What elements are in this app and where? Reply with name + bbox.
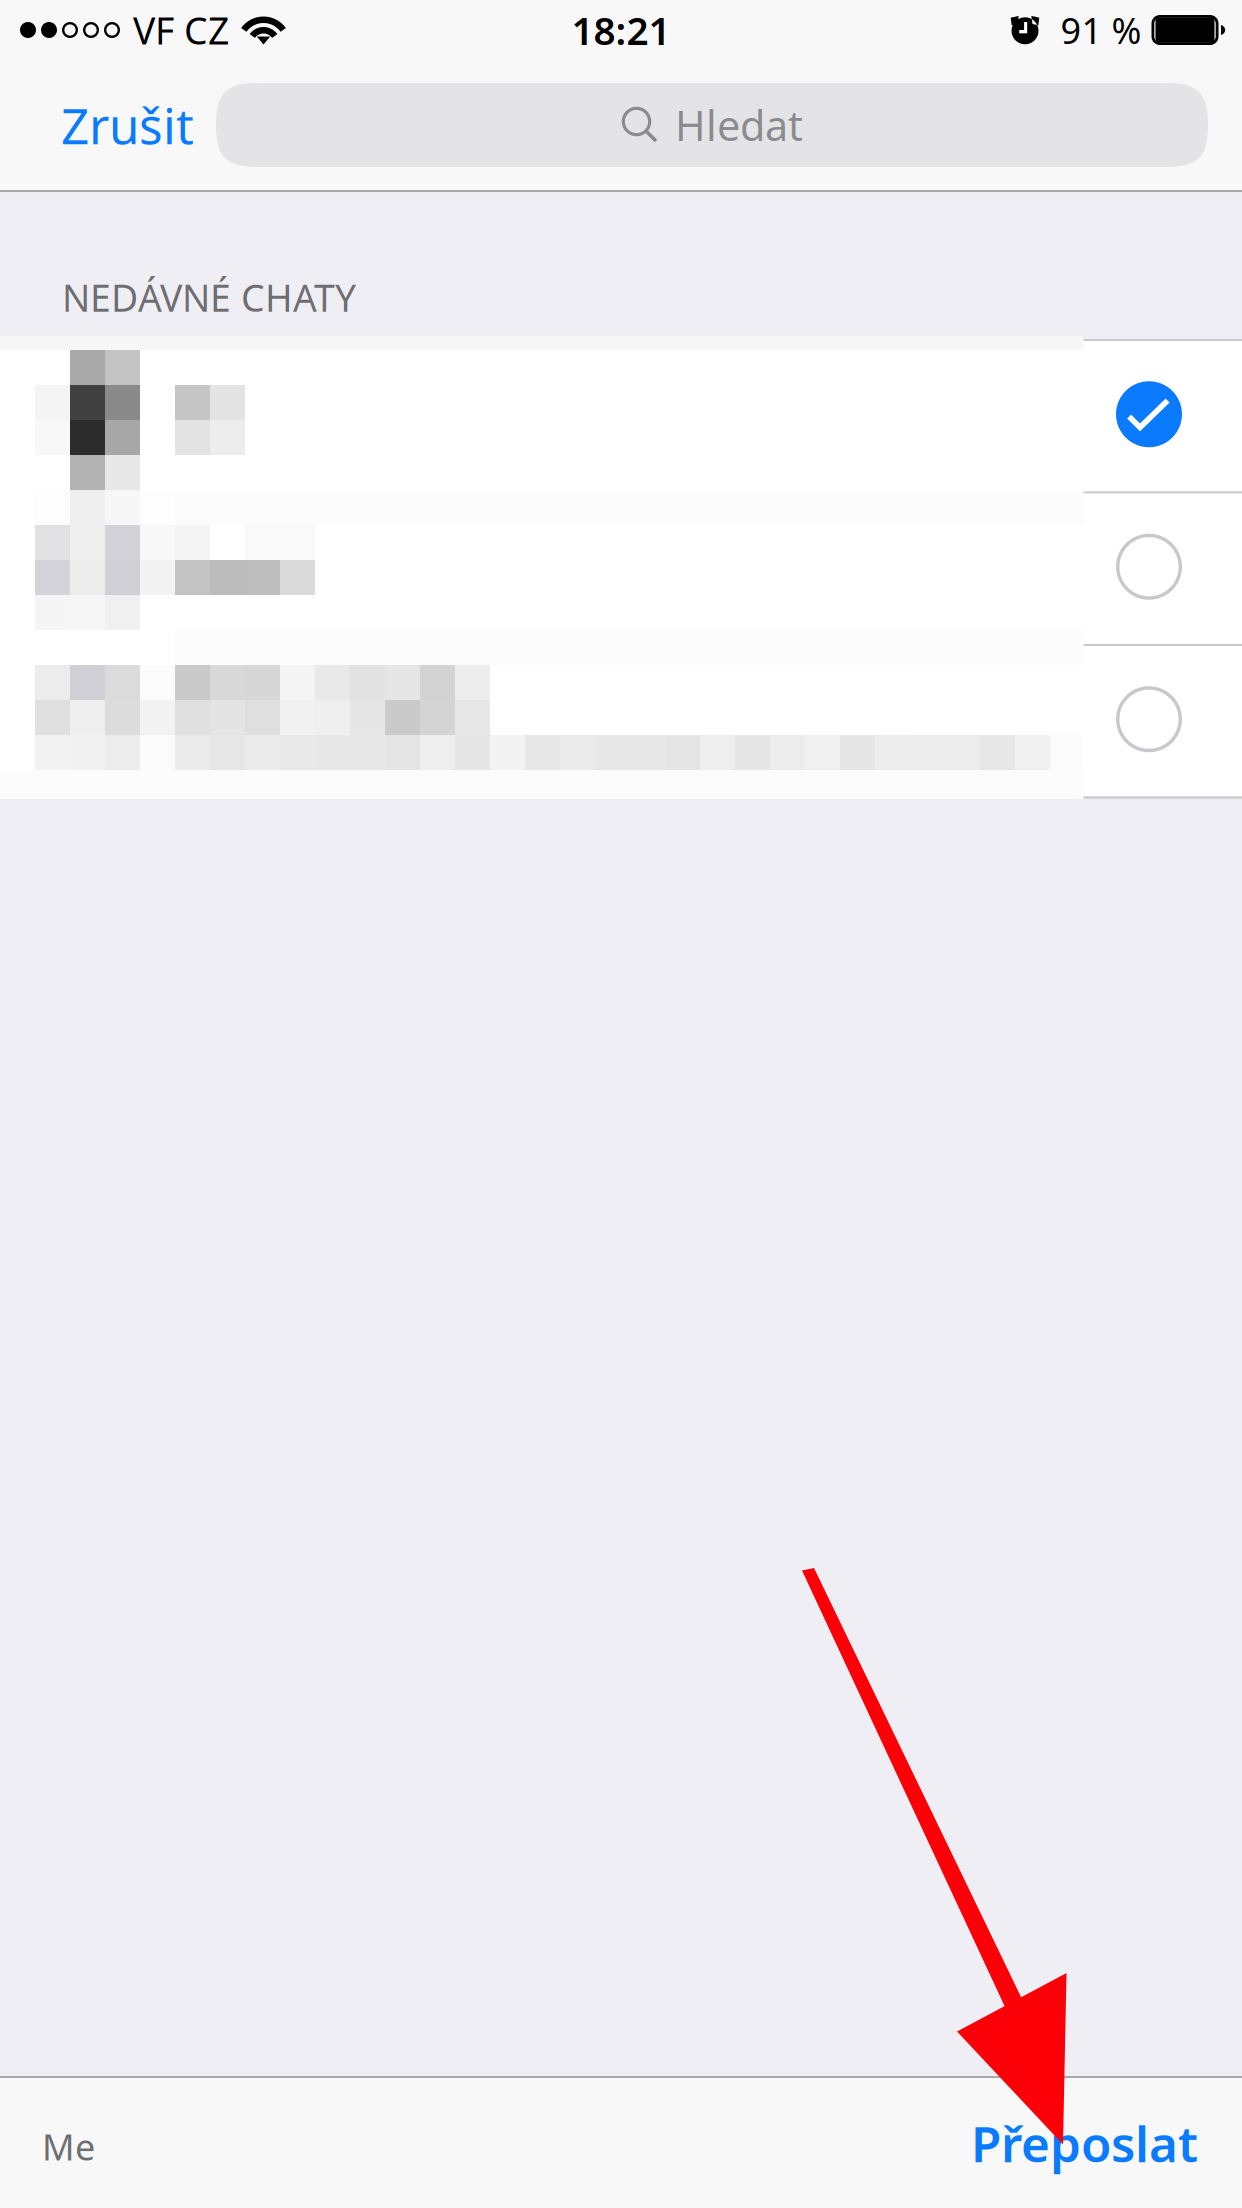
button[interactable]: Me <box>0 2078 125 2208</box>
button[interactable]: Chat <box>0 493 1242 644</box>
button[interactable]: Chat selected <box>0 341 1242 491</box>
button[interactable]: Zrušit <box>0 60 216 190</box>
staticText: Me <box>42 2123 95 2170</box>
staticText: NEDÁVNÉ CHATY <box>62 272 356 322</box>
button[interactable]: Hledat <box>216 83 1208 167</box>
staticText: Hledat <box>675 98 803 152</box>
staticText: Zrušit <box>61 92 194 158</box>
button[interactable]: Chat <box>0 646 1242 796</box>
button[interactable]: Přeposlat <box>941 2078 1242 2208</box>
staticText: 91 % <box>1060 6 1141 54</box>
staticText: 18:21 <box>571 4 670 56</box>
staticText: VF CZ <box>133 5 229 55</box>
staticText: Přeposlat <box>971 2110 1198 2176</box>
